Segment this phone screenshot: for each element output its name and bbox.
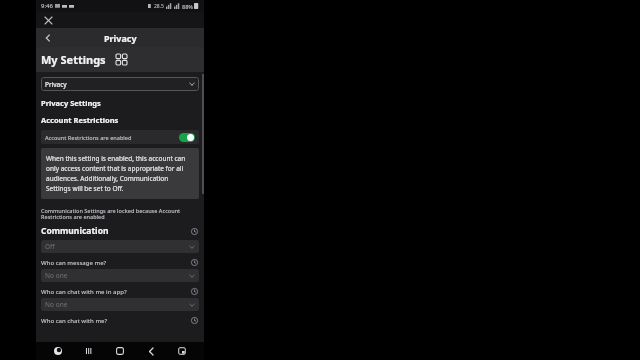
staticText: Privacy [104, 32, 137, 44]
staticText: Who can chat with me in app? [41, 288, 127, 296]
button[interactable]: Off [41, 240, 199, 253]
staticText: No one [45, 271, 68, 280]
staticText: 28.5 [154, 3, 164, 10]
button[interactable]: Account Restrictions are enabled [41, 130, 199, 144]
button[interactable]: Help [190, 258, 199, 267]
staticText: Who can message me? [41, 259, 107, 267]
button[interactable]: No one [41, 269, 199, 282]
button[interactable]: Help [190, 227, 199, 236]
button[interactable]: Help [190, 287, 199, 296]
button[interactable]: No one [41, 298, 199, 311]
staticText: Communication [41, 225, 109, 237]
button[interactable]: Home [111, 342, 129, 360]
staticText: Account Restrictions [41, 115, 119, 125]
staticText: 9:46 [41, 2, 53, 10]
button[interactable]: Privacy [41, 77, 199, 91]
staticText: Privacy [45, 80, 67, 89]
staticText: Account Restrictions are enabled [45, 134, 132, 141]
staticText: My Settings [41, 52, 106, 67]
button[interactable]: Help [190, 316, 199, 325]
button[interactable]: Assistant [49, 342, 67, 360]
staticText: Off [45, 242, 55, 251]
button[interactable]: Grid menu [114, 52, 129, 67]
button[interactable]: Back [142, 342, 160, 360]
staticText: Who can chat with me? [41, 317, 108, 325]
staticText: No one [45, 300, 68, 309]
staticText: Communication Settings are locked becaus… [41, 207, 199, 221]
staticText: Privacy Settings [41, 98, 101, 108]
button[interactable]: Back [39, 29, 57, 47]
staticText: When this setting is enabled, this accou… [46, 154, 194, 193]
staticText: 88% [182, 3, 193, 10]
button[interactable]: Close [40, 12, 56, 28]
button[interactable]: Screenshot [173, 342, 191, 360]
button[interactable]: Recent apps [80, 342, 98, 360]
